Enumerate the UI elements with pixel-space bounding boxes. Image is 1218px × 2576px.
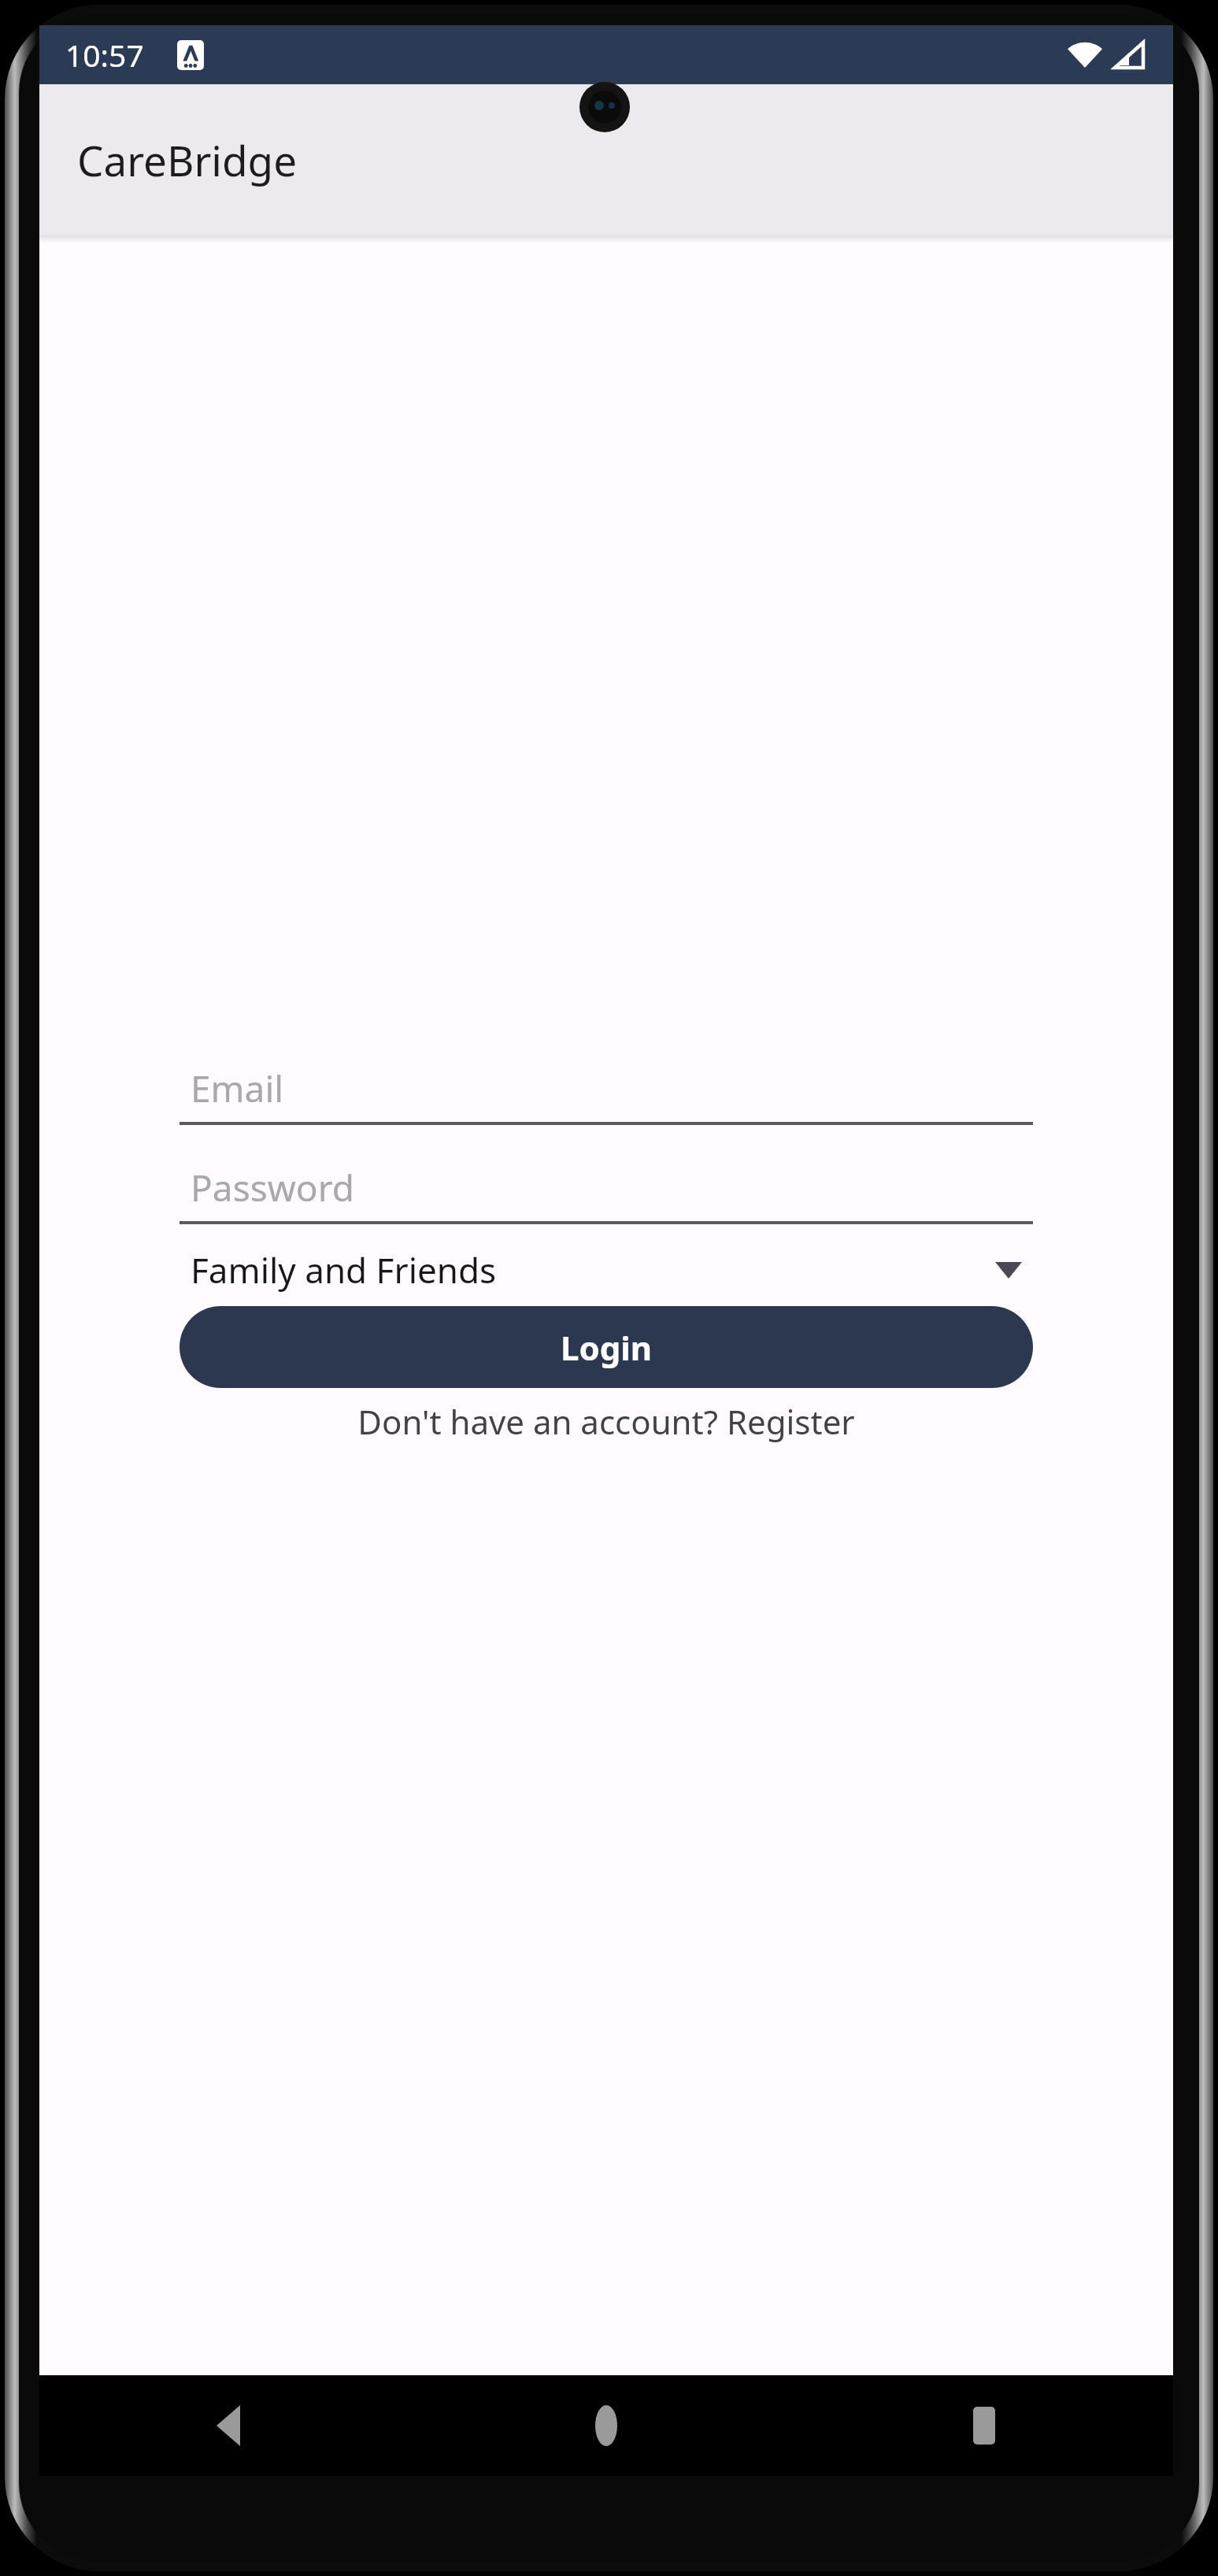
staticText: Email xyxy=(191,1064,284,1113)
staticText: Family and Friends xyxy=(191,1246,497,1294)
button[interactable]: Family and Friends xyxy=(180,1237,1033,1303)
button[interactable]: Back xyxy=(39,2375,417,2476)
staticText: Login xyxy=(561,1325,653,1370)
button[interactable]: Login xyxy=(180,1306,1033,1388)
staticText: CareBridge xyxy=(77,131,298,188)
staticText: Password xyxy=(191,1163,355,1212)
button[interactable]: Don't have an account? Register xyxy=(180,1399,1033,1444)
staticText: 10:57 xyxy=(65,34,144,76)
button[interactable]: Email xyxy=(180,1054,1033,1125)
button[interactable]: Recent apps xyxy=(795,2375,1173,2476)
button[interactable]: Password xyxy=(180,1153,1033,1224)
staticText: Don't have an account? Register xyxy=(357,1399,855,1444)
button[interactable]: Home xyxy=(417,2375,795,2476)
